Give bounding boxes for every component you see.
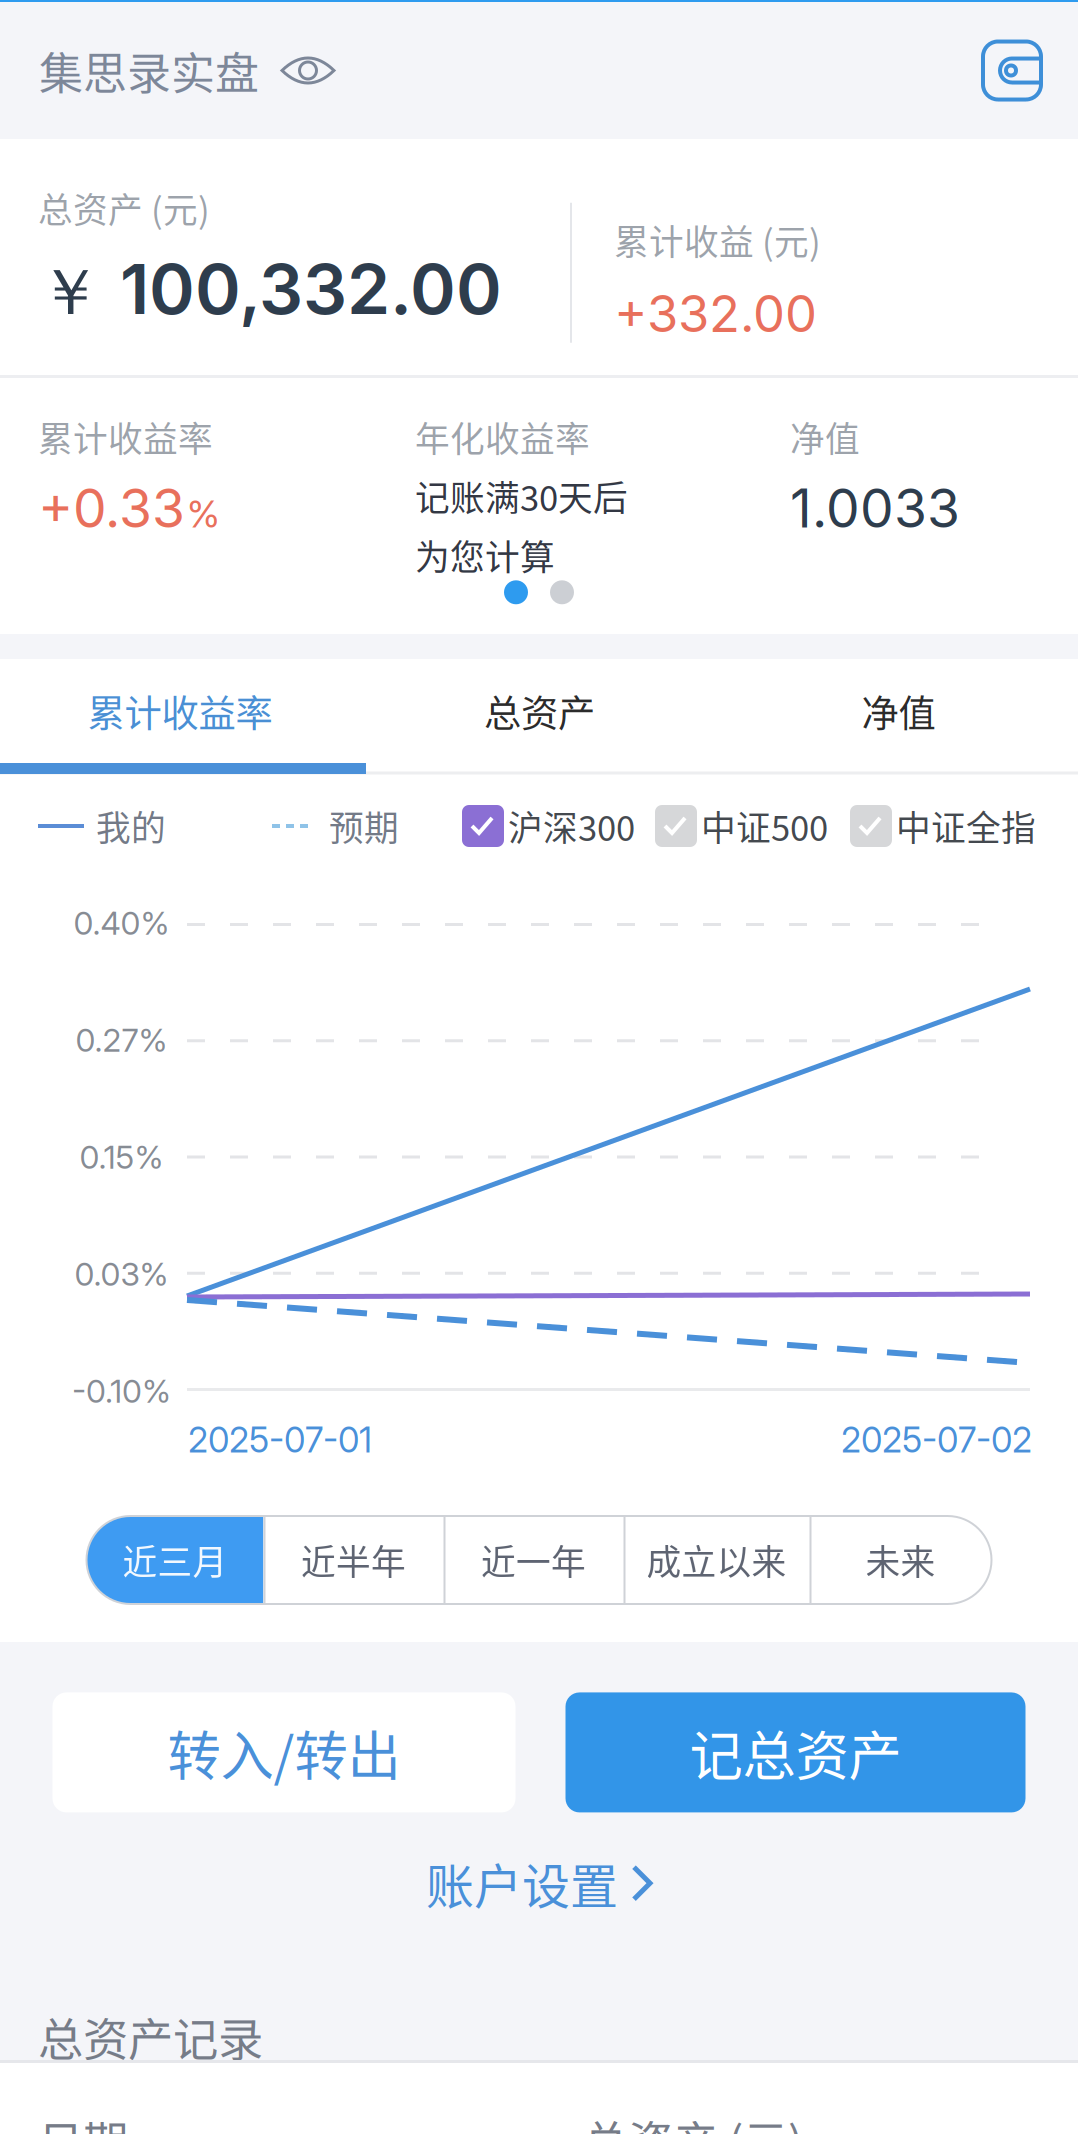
staticText: +0.33 (38, 476, 185, 540)
button[interactable]: 近三月 (86, 1516, 263, 1604)
button[interactable]: 中证500 (655, 801, 828, 851)
staticText: 近半年 (301, 1535, 406, 1585)
staticText: 总资产 (484, 684, 595, 738)
staticText: 年化收益率 (415, 412, 590, 462)
button[interactable]: 转入/转出 (52, 1692, 515, 1812)
staticText: 1.0033 (790, 476, 960, 540)
button[interactable]: Wallet (984, 41, 1042, 99)
staticText: 记账满30天后 (415, 471, 628, 521)
staticText: % (187, 491, 220, 536)
staticText: ￥ (38, 252, 102, 333)
staticText: 0.40% (73, 904, 169, 942)
staticText: 2025-07-01 (188, 1419, 372, 1461)
staticText: 近一年 (481, 1535, 586, 1585)
staticText: 总资产 (元) (583, 2107, 803, 2134)
staticText: 累计收益率 (87, 684, 272, 738)
staticText: 近三月 (122, 1535, 227, 1585)
staticText: +332.00 (614, 283, 817, 344)
staticText: 为您计算 (415, 530, 555, 580)
staticText: 净值 (790, 412, 860, 462)
staticText: 中证500 (701, 801, 828, 851)
button[interactable]: 总资产 (360, 659, 719, 763)
button[interactable]: 净值 (719, 659, 1078, 763)
staticText: 总资产 (元) (38, 183, 210, 233)
button[interactable]: 累计收益率 (0, 659, 360, 763)
button[interactable]: 未来 (809, 1516, 991, 1604)
staticText: 成立以来 (646, 1535, 786, 1585)
staticText: 0.03% (74, 1255, 168, 1293)
staticText: 2025-07-02 (841, 1419, 1032, 1461)
staticText: 累计收益率 (38, 412, 213, 462)
staticText: 集思录实盘 (39, 39, 259, 102)
staticText: 0.27% (75, 1021, 167, 1059)
staticText: -0.10% (72, 1372, 171, 1410)
staticText: 预期 (329, 801, 399, 851)
staticText: 0.15% (79, 1138, 163, 1176)
button[interactable]: 集思录实盘 (39, 17, 335, 124)
button[interactable]: 账户设置 (426, 1812, 652, 1938)
staticText: 总资产记录 (38, 2004, 263, 2069)
staticText: 记总资产 (689, 1714, 901, 1791)
button[interactable]: 近半年 (263, 1516, 443, 1604)
button[interactable]: 沪深300 (462, 801, 635, 851)
staticText: 累计收益 (元) (614, 215, 821, 265)
button[interactable]: 中证全指 (850, 801, 1036, 851)
staticText: 中证全指 (896, 801, 1036, 851)
button[interactable]: 近一年 (443, 1516, 623, 1604)
staticText: 转入/转出 (167, 1714, 400, 1791)
staticText: 未来 (865, 1535, 935, 1585)
staticText: 净值 (861, 684, 935, 738)
staticText: 账户设置 (426, 1848, 618, 1918)
staticText: 日期 (38, 2107, 128, 2134)
button[interactable]: 记总资产 (565, 1692, 1025, 1812)
button[interactable]: 成立以来 (623, 1516, 809, 1604)
staticText: 100,332.00 (120, 247, 502, 331)
staticText: 我的 (96, 801, 166, 851)
staticText: 沪深300 (508, 801, 635, 851)
